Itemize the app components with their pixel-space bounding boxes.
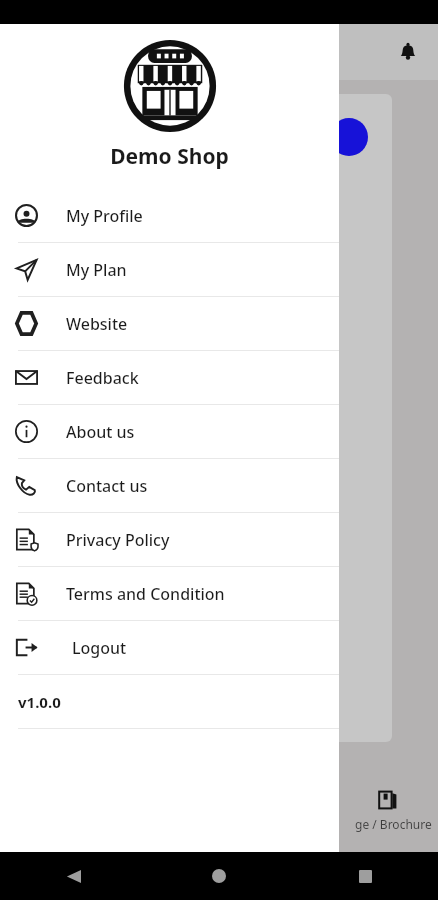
- button[interactable]: Feedback: [0, 351, 339, 404]
- button[interactable]: Back: [56, 859, 90, 893]
- button[interactable]: My Profile: [0, 189, 339, 242]
- staticText: My Profile: [66, 205, 143, 227]
- staticText: v1.0.0: [18, 692, 61, 712]
- button[interactable]: About us: [0, 405, 339, 458]
- staticText: Feedback: [66, 367, 139, 389]
- button[interactable]: Notifications: [388, 32, 428, 72]
- button[interactable]: Recents: [348, 859, 382, 893]
- staticText: About us: [66, 421, 135, 443]
- staticText: Terms and Condition: [66, 583, 225, 605]
- button[interactable]: Privacy Policy: [0, 513, 339, 566]
- staticText: Logout: [72, 637, 127, 659]
- staticText: Contact us: [66, 475, 148, 497]
- staticText: Demo Shop: [110, 142, 229, 171]
- button[interactable]: My Plan: [0, 243, 339, 296]
- staticText: Website: [66, 313, 128, 335]
- button[interactable]: Website: [0, 297, 339, 350]
- button[interactable]: Home: [202, 859, 236, 893]
- button[interactable]: Logout: [0, 621, 339, 674]
- staticText: My Plan: [66, 259, 127, 281]
- staticText: ge / Brochure: [355, 816, 432, 832]
- staticText: Privacy Policy: [66, 529, 170, 551]
- button[interactable]: Contact us: [0, 459, 339, 512]
- button[interactable]: Terms and Condition: [0, 567, 339, 620]
